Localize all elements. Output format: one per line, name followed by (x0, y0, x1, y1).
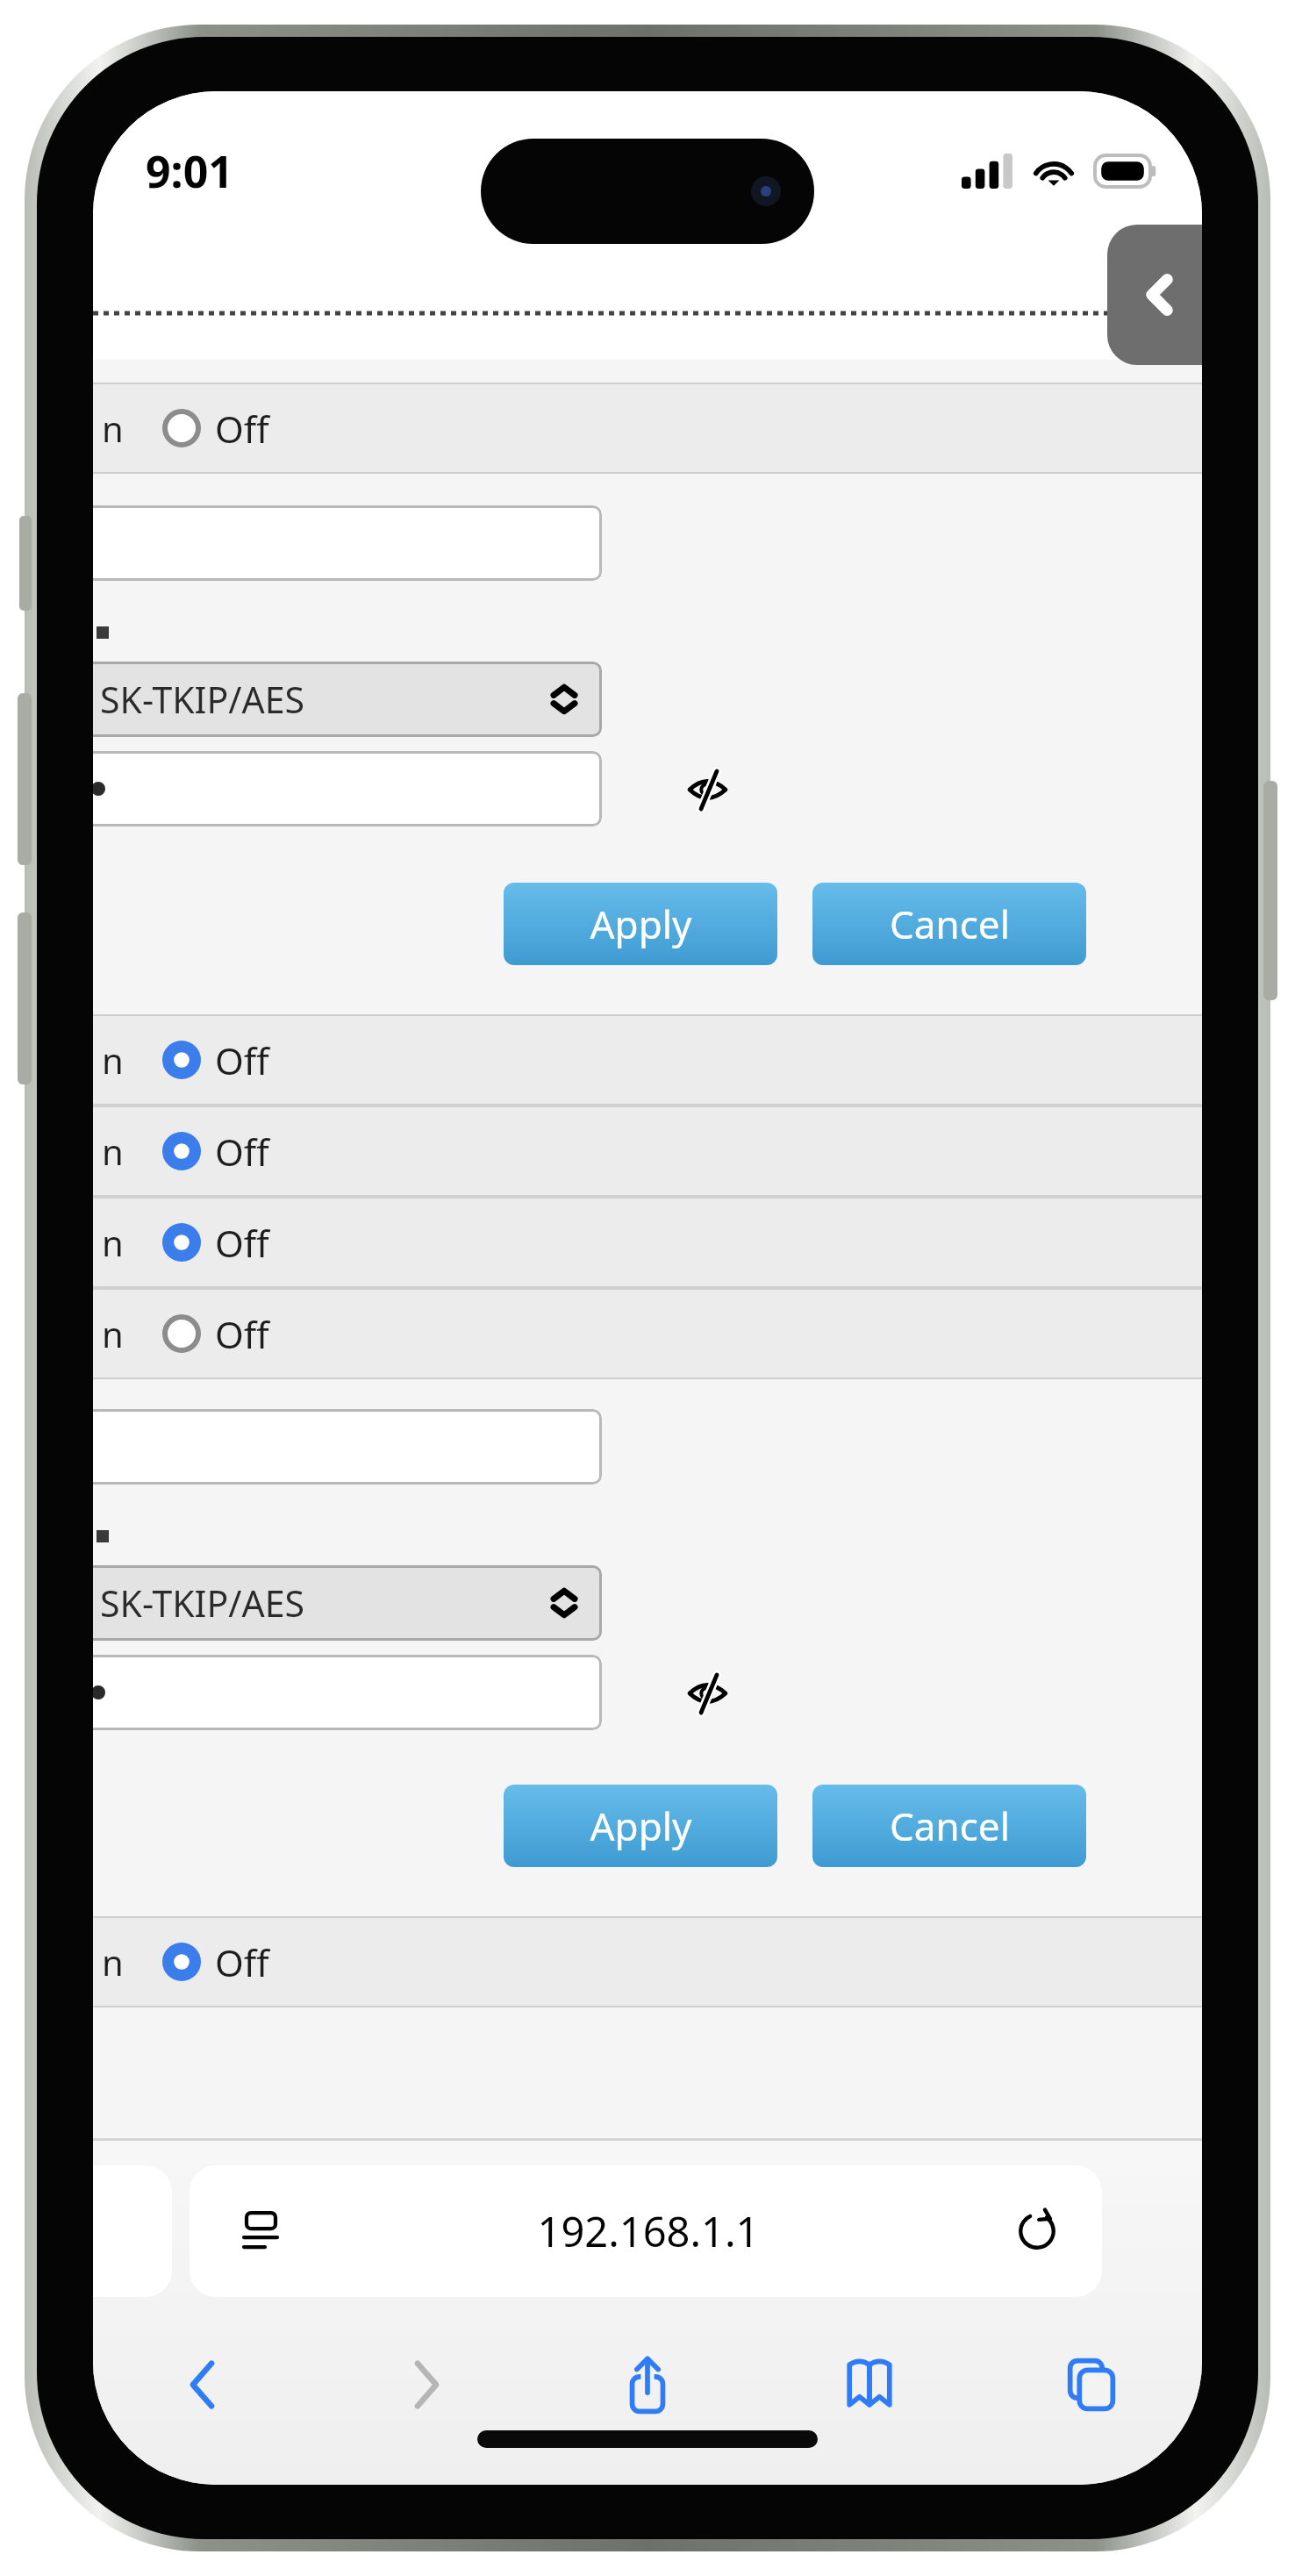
staticText: Cancel (890, 898, 1010, 950)
staticText: 9:01 (146, 141, 233, 201)
button[interactable]: Cancel (812, 1785, 1086, 1867)
staticText: SK-TKIP/AES (100, 675, 305, 724)
button[interactable] (93, 1409, 602, 1485)
staticText: n (102, 1127, 124, 1175)
staticText: Off (215, 1127, 269, 1177)
staticText: n (102, 1938, 124, 1986)
staticText: Off (215, 1937, 269, 1987)
staticText: Off (215, 404, 269, 454)
button[interactable]: SK-TKIP/AES (93, 1565, 602, 1641)
staticText: 192.168.1.1 (286, 2203, 1011, 2259)
button[interactable]: Reload (1011, 2205, 1063, 2258)
button[interactable]: Cancel (812, 883, 1086, 965)
staticText: n (102, 1219, 124, 1266)
button[interactable]: Share (536, 2332, 758, 2437)
staticText: Cancel (890, 1800, 1010, 1852)
button[interactable]: Apply (504, 883, 777, 965)
button[interactable]: n (93, 1290, 1202, 1377)
staticText: n (102, 404, 124, 452)
button[interactable] (93, 1655, 602, 1730)
button[interactable] (93, 751, 602, 826)
button[interactable]: Back (93, 2332, 314, 2437)
staticText: Apply (590, 898, 692, 950)
staticText: SK-TKIP/AES (100, 1578, 305, 1628)
button[interactable]: Tabs (980, 2332, 1202, 2437)
button[interactable] (93, 505, 602, 581)
button[interactable]: n (93, 1918, 1202, 2006)
button[interactable]: Page settings (190, 2165, 1102, 2297)
staticText: Off (215, 1309, 269, 1359)
button[interactable]: Page settings (237, 2207, 286, 2256)
button[interactable]: SK-TKIP/AES (93, 662, 602, 737)
staticText: Off (215, 1035, 269, 1085)
staticText: n (102, 1036, 124, 1084)
button[interactable]: Go back (1107, 225, 1202, 365)
button[interactable]: Forward (314, 2332, 536, 2437)
staticText: n (102, 1310, 124, 1357)
staticText: Apply (590, 1800, 692, 1852)
button[interactable]: n (93, 1016, 1202, 1104)
button[interactable]: Apply (504, 1785, 777, 1867)
button[interactable]: Show password (681, 762, 735, 816)
button[interactable]: n (93, 384, 1202, 472)
staticText: Off (215, 1218, 269, 1268)
button[interactable]: Bookmarks (758, 2332, 980, 2437)
button[interactable]: n (93, 1199, 1202, 1286)
button[interactable]: n (93, 1107, 1202, 1195)
button[interactable]: Show password (681, 1665, 735, 1720)
